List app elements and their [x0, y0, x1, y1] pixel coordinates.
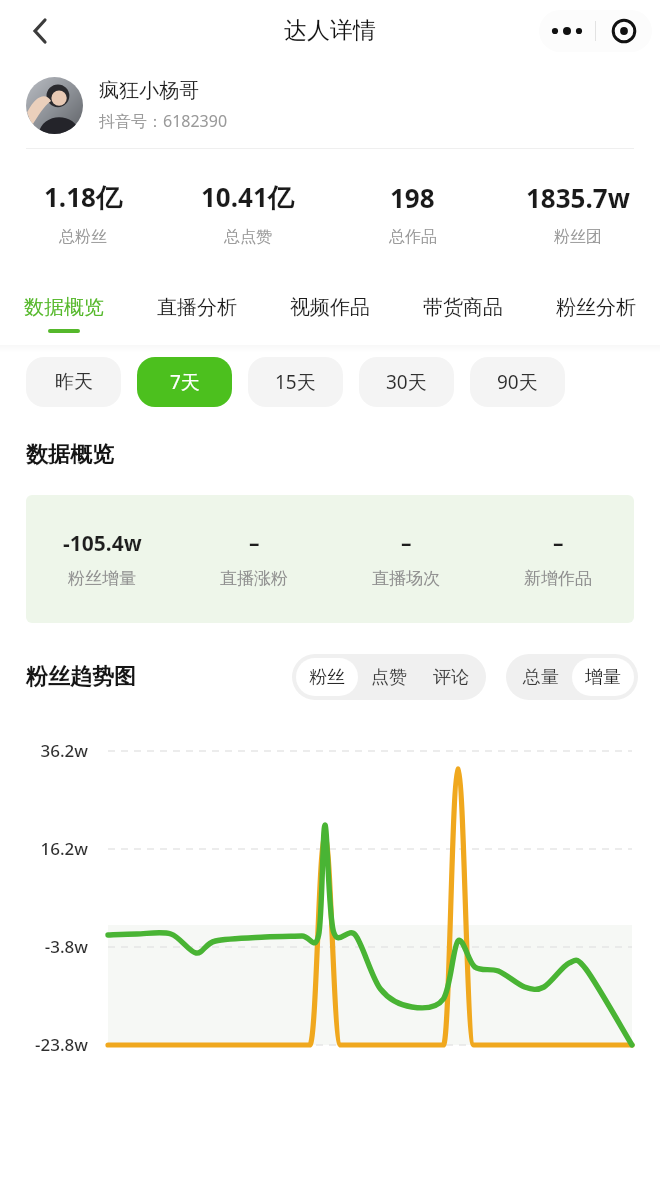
staticText: 粉丝趋势图: [26, 663, 136, 691]
staticText: 7天: [170, 369, 200, 395]
staticText: 36.2w: [0, 739, 88, 762]
button[interactable]: 粉丝分析: [554, 277, 638, 329]
staticText: 总量: [523, 666, 559, 689]
button[interactable]: 带货商品: [421, 277, 505, 329]
staticText: -23.8w: [0, 1033, 88, 1056]
staticText: 直播分析: [157, 295, 237, 320]
staticText: 粉丝分析: [556, 295, 636, 320]
staticText: 15天: [275, 369, 316, 395]
staticText: 粉丝团: [554, 227, 602, 247]
button[interactable]: 1.18亿: [0, 179, 165, 247]
button[interactable]: 评论: [420, 658, 482, 696]
button[interactable]: 1835.7w: [495, 180, 660, 247]
button[interactable]: 15天: [248, 357, 343, 407]
staticText: 总作品: [389, 227, 437, 247]
staticText: 30天: [386, 369, 427, 395]
staticText: 198: [390, 180, 435, 215]
staticText: 抖音号：6182390: [99, 110, 228, 132]
staticText: 总粉丝: [59, 227, 107, 247]
button[interactable]: 直播分析: [155, 277, 239, 329]
staticText: 带货商品: [423, 295, 503, 320]
staticText: –: [553, 529, 564, 558]
staticText: 直播涨粉: [220, 568, 288, 589]
button[interactable]: 7天: [137, 357, 232, 407]
staticText: 90天: [497, 369, 538, 395]
staticText: 视频作品: [290, 295, 370, 320]
staticText: 10.41亿: [201, 179, 294, 215]
staticText: 直播场次: [372, 568, 440, 589]
staticText: 总点赞: [224, 227, 272, 247]
button[interactable]: Mini program menu: [539, 10, 652, 52]
staticText: –: [249, 529, 260, 558]
staticText: 粉丝增量: [68, 568, 136, 589]
button[interactable]: 总量: [510, 658, 572, 696]
button[interactable]: 198: [330, 180, 495, 247]
button[interactable]: 增量: [572, 658, 634, 696]
button[interactable]: 10.41亿: [165, 179, 330, 247]
staticText: 新增作品: [524, 568, 592, 589]
staticText: 粉丝: [309, 666, 345, 689]
staticText: 增量: [585, 666, 621, 689]
button[interactable]: Back: [14, 5, 66, 57]
button[interactable]: 30天: [359, 357, 454, 407]
staticText: 1.18亿: [44, 179, 122, 215]
button[interactable]: 90天: [470, 357, 565, 407]
staticText: -105.4w: [63, 529, 142, 558]
staticText: 评论: [433, 666, 469, 689]
staticText: -3.8w: [0, 935, 88, 958]
staticText: 疯狂小杨哥: [99, 78, 199, 103]
button[interactable]: -105.4w: [26, 495, 634, 623]
staticText: 数据概览: [24, 295, 104, 320]
button[interactable]: 疯狂小杨哥: [0, 62, 660, 148]
staticText: 点赞: [371, 666, 407, 689]
staticText: 昨天: [55, 370, 93, 394]
button[interactable]: 点赞: [358, 658, 420, 696]
staticText: 1835.7w: [526, 180, 630, 215]
staticText: 16.2w: [0, 837, 88, 860]
staticText: 数据概览: [26, 441, 114, 469]
button[interactable]: 数据概览: [22, 277, 106, 333]
staticText: 达人详情: [284, 16, 376, 45]
button[interactable]: 粉丝: [296, 658, 358, 696]
staticText: –: [401, 529, 412, 558]
button[interactable]: 昨天: [26, 357, 121, 407]
button[interactable]: 视频作品: [288, 277, 372, 329]
